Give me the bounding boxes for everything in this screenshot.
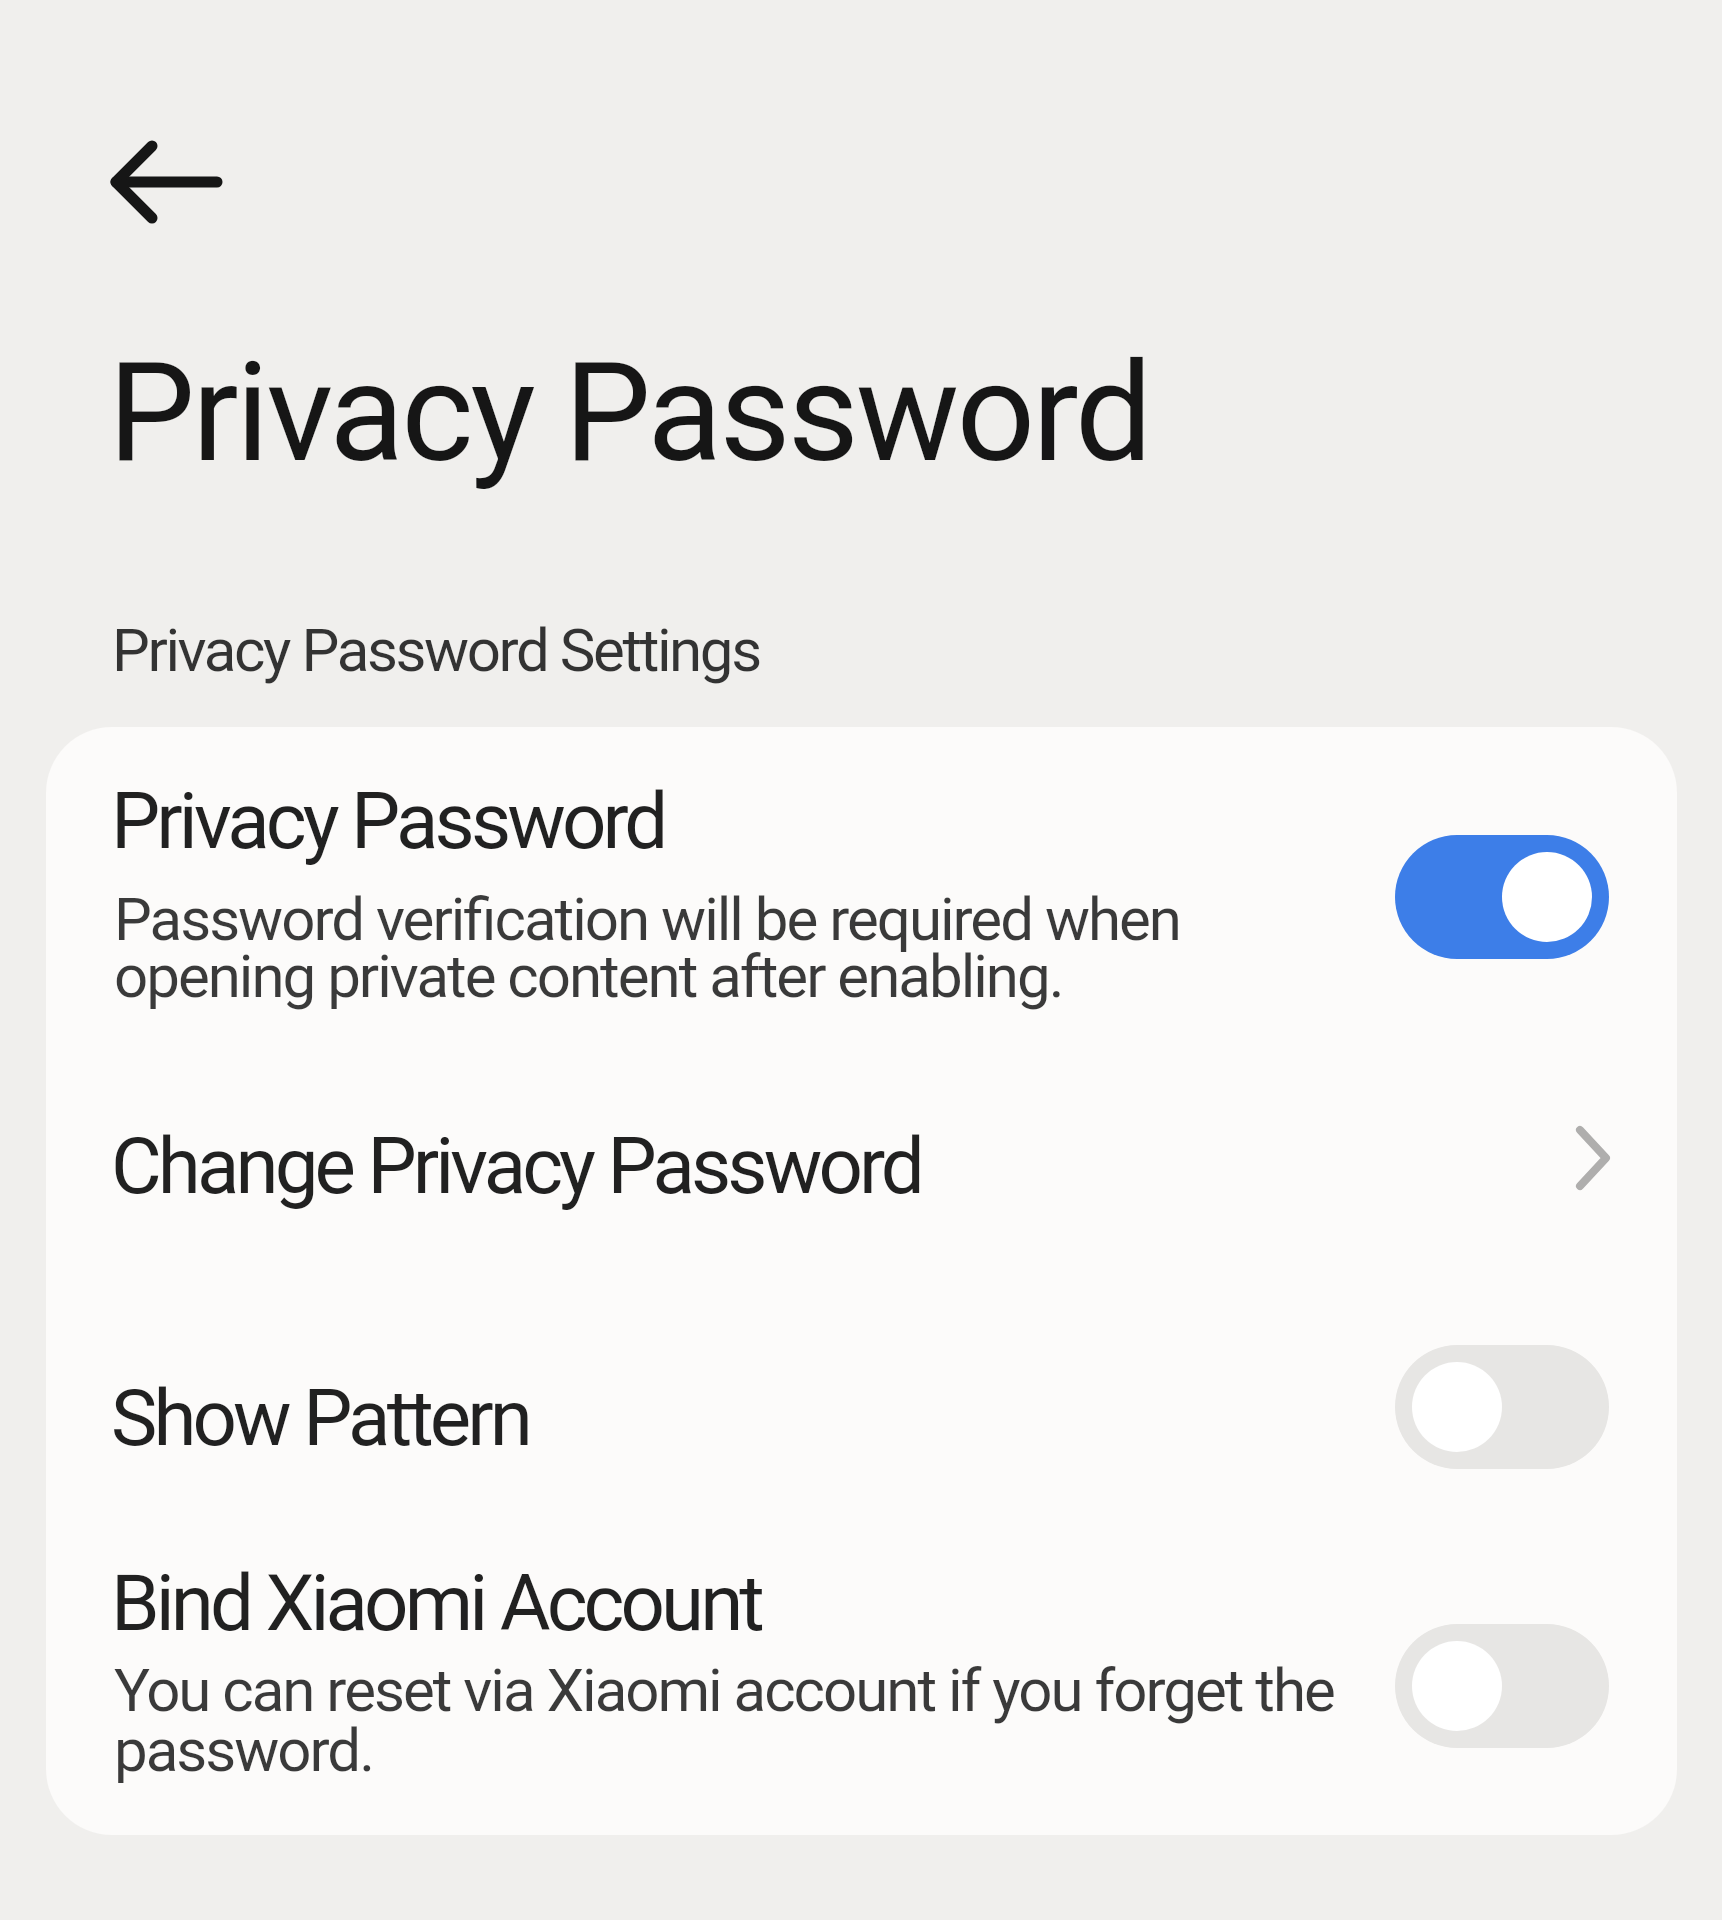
staticText: Change Privacy Password [111,1121,921,1212]
button[interactable] [46,1292,1677,1532]
button[interactable] [1395,835,1609,959]
button[interactable] [90,120,240,245]
button[interactable] [46,1057,1677,1292]
staticText: password. [114,1715,374,1785]
button[interactable] [1395,1345,1609,1469]
staticText: Privacy Password [108,332,1150,494]
button[interactable] [46,727,1677,1057]
staticText: Password verification will be required w… [114,884,1180,954]
staticText: opening private content after enabling. [114,941,1063,1011]
staticText: Show Pattern [111,1373,530,1464]
staticText: You can reset via Xiaomi account if you … [114,1655,1334,1725]
staticText: Bind Xiaomi Account [111,1558,761,1649]
staticText: Privacy Password Settings [112,615,760,685]
button[interactable] [1395,1624,1609,1748]
staticText: Privacy Password [111,776,665,867]
button[interactable] [46,1532,1677,1835]
